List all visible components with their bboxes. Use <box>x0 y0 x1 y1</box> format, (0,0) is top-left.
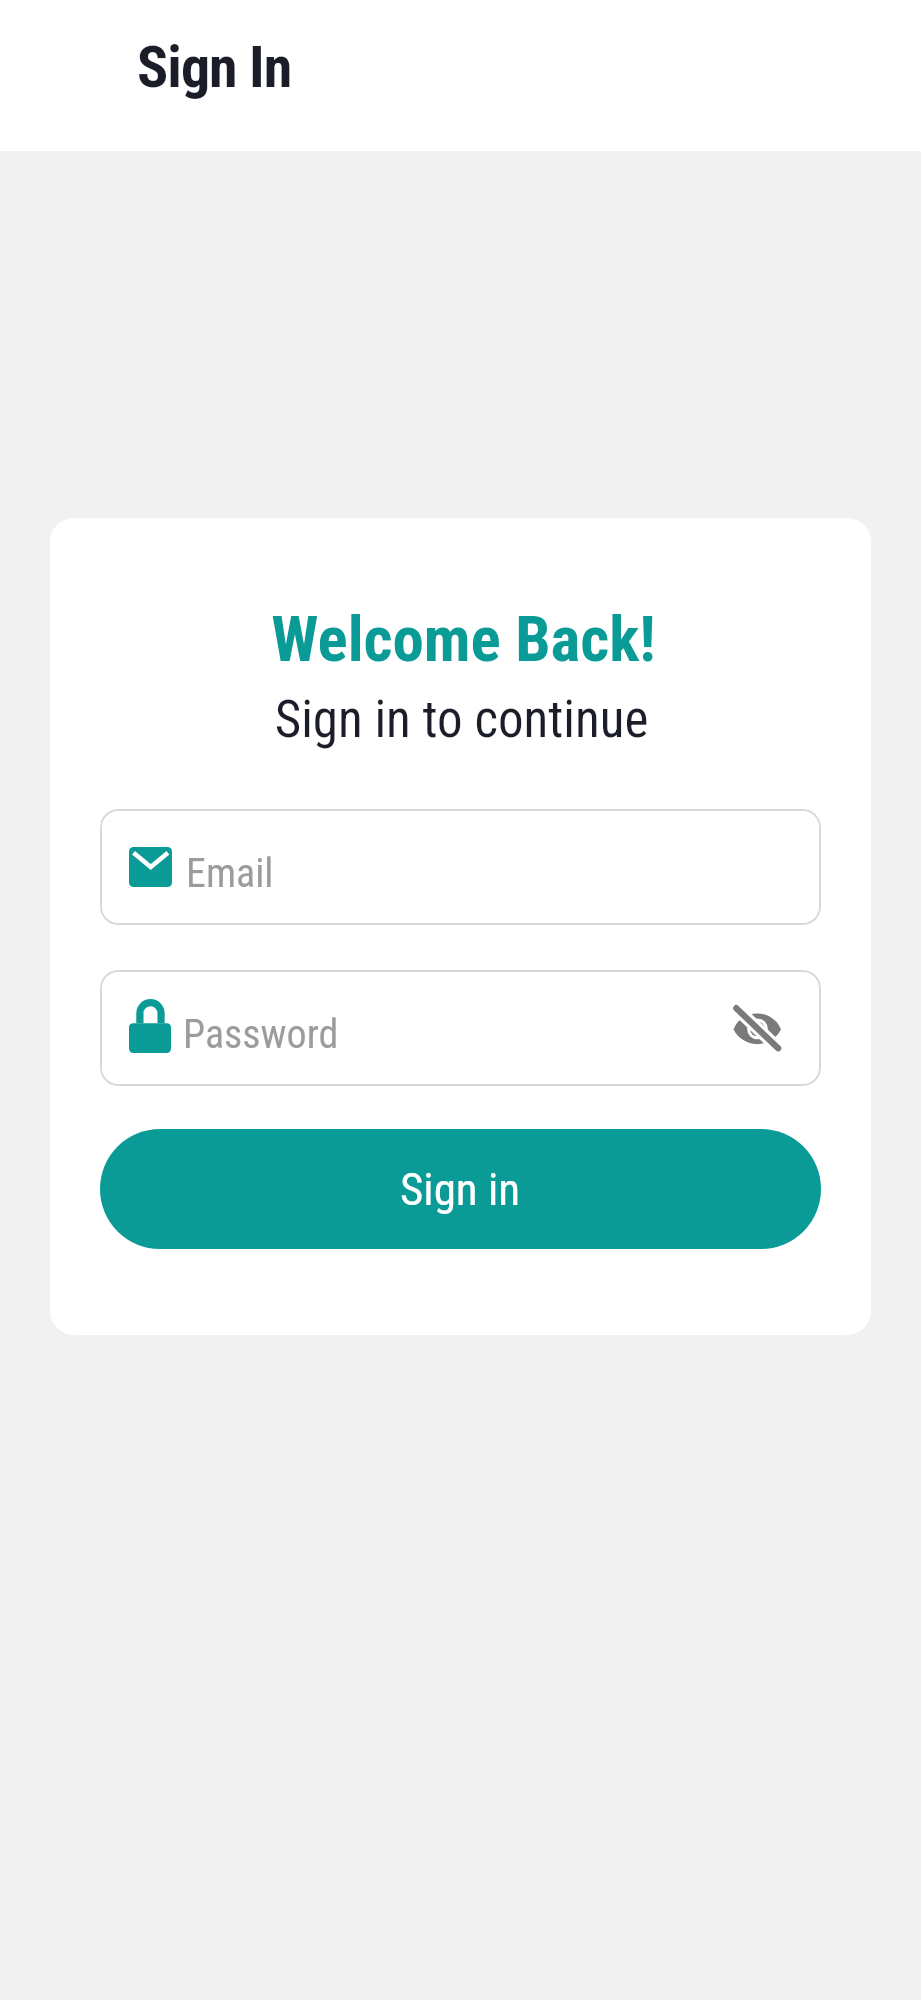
staticText: Password <box>183 1011 730 1058</box>
staticText: Sign in to continue <box>51 690 871 750</box>
button[interactable]: Sign in <box>100 1129 821 1249</box>
button[interactable]: Email <box>100 809 821 925</box>
staticText: Email <box>186 850 274 897</box>
staticText: Sign In <box>137 33 292 101</box>
staticText: Welcome Back! <box>53 603 871 677</box>
button[interactable]: Password <box>100 970 821 1086</box>
staticText: Sign in <box>400 1163 521 1216</box>
button[interactable]: Show password <box>730 1000 786 1056</box>
